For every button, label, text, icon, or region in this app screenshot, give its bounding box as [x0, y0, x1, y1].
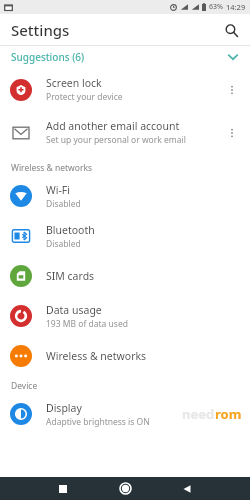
button[interactable]: Back [169, 477, 205, 500]
button[interactable]: Suggestions (6) [0, 46, 250, 68]
staticText: Settings [11, 20, 70, 40]
button[interactable]: Display [0, 394, 250, 434]
button[interactable]: Bluetooth [0, 216, 250, 256]
staticText: need [182, 405, 215, 423]
button[interactable]: SIM cards [0, 256, 250, 296]
staticText: Disabled [46, 238, 81, 250]
staticText: rom [215, 405, 242, 423]
button[interactable]: Screen lock [0, 68, 250, 111]
staticText: Add another email account [46, 119, 180, 133]
staticText: Screen lock [46, 76, 102, 90]
staticText: 14:29 [226, 2, 246, 12]
staticText: Adaptive brightness is ON [46, 416, 150, 428]
staticText: 63% [209, 2, 223, 12]
staticText: Wi-Fi [46, 183, 71, 197]
button[interactable]: Home [107, 477, 143, 500]
staticText: Protect your device [46, 91, 123, 103]
button[interactable]: More options [222, 80, 242, 100]
button[interactable]: Search [218, 17, 244, 43]
button[interactable]: Recent apps [45, 477, 81, 500]
staticText: Data usage [46, 303, 102, 317]
staticText: Display [46, 401, 82, 415]
staticText: 193 MB of data used [46, 318, 128, 330]
staticText: SIM cards [46, 269, 95, 283]
staticText: Wireless & networks [11, 162, 93, 174]
button[interactable]: More options [222, 123, 242, 143]
button[interactable]: Wi-Fi [0, 176, 250, 216]
staticText: Wireless & networks [46, 349, 147, 363]
staticText: Bluetooth [46, 223, 95, 237]
staticText: Device [11, 380, 38, 392]
staticText: Disabled [46, 198, 81, 210]
button[interactable]: Data usage [0, 296, 250, 336]
button[interactable]: Wireless & networks [0, 336, 250, 376]
staticText: Suggestions (6) [11, 50, 85, 64]
staticText: Set up your personal or work email [46, 134, 186, 146]
button[interactable]: Add another email account [0, 111, 250, 154]
